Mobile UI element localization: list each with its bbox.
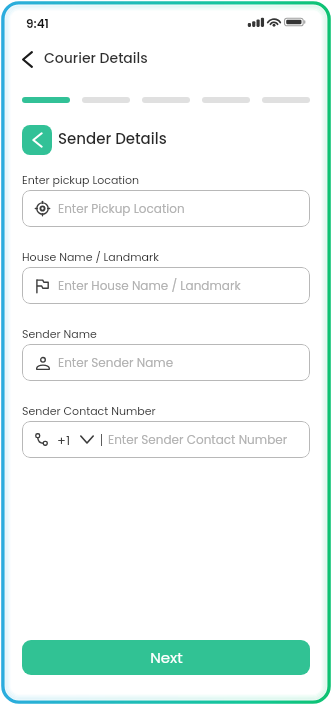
button[interactable]: Enter Sender Name — [22, 344, 310, 381]
staticText: Sender Contact Number — [22, 403, 156, 418]
staticText: Courier Details — [44, 48, 148, 68]
button[interactable]: Enter Pickup Location — [22, 190, 310, 227]
staticText: House Name / Landmark — [22, 249, 159, 264]
staticText: Enter Pickup Location — [58, 200, 185, 217]
button[interactable]: Back — [15, 47, 39, 71]
button[interactable]: Previous step — [22, 125, 52, 155]
staticText: Sender Details — [58, 128, 167, 149]
staticText: Enter House Name / Landmark — [58, 277, 241, 294]
button[interactable]: Enter House Name / Landmark — [22, 267, 310, 304]
button[interactable]: Next — [22, 640, 310, 675]
staticText: Next — [150, 647, 183, 668]
staticText: Enter pickup Location — [22, 172, 140, 187]
staticText: Enter Sender Name — [58, 354, 174, 371]
staticText: Enter Sender Contact Number — [108, 431, 288, 448]
button[interactable]: +1 — [22, 421, 310, 458]
staticText: 9:41 — [26, 15, 49, 32]
staticText: +1 — [57, 431, 71, 449]
staticText: Sender Name — [22, 326, 97, 341]
